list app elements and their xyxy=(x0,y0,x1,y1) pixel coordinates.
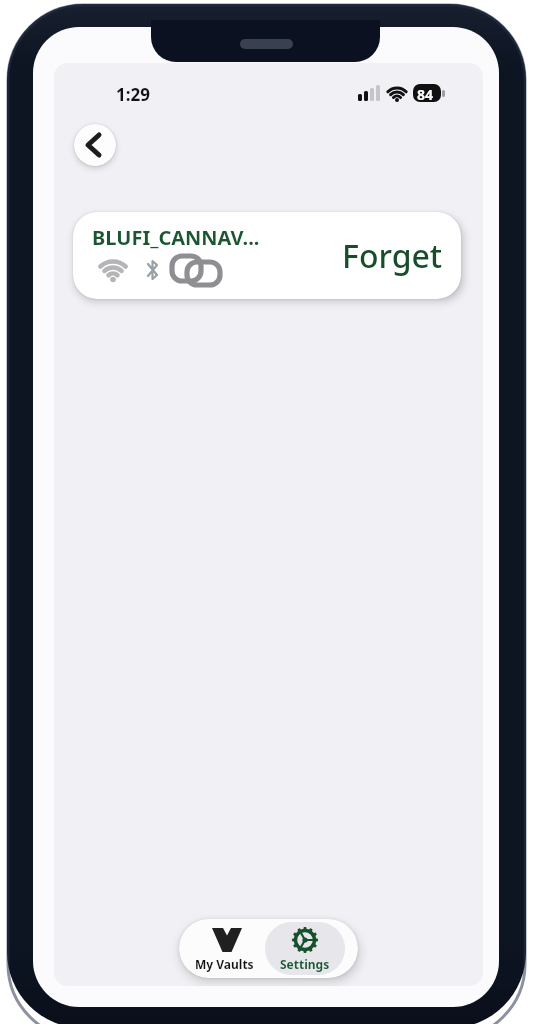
staticText: Settings xyxy=(280,956,330,972)
button[interactable] xyxy=(265,922,345,975)
staticText: 84 xyxy=(417,85,434,104)
button[interactable]: Settings xyxy=(265,919,345,978)
staticText: My Vaults xyxy=(195,956,254,972)
button[interactable]: My Vaults xyxy=(179,919,269,978)
button[interactable] xyxy=(74,124,116,166)
staticText: 1:29 xyxy=(116,83,150,106)
button[interactable]: Forget xyxy=(342,234,443,278)
staticText: BLUFI_CANNAV... xyxy=(92,224,260,251)
button[interactable]: BLUFI_CANNAV... xyxy=(73,212,461,299)
